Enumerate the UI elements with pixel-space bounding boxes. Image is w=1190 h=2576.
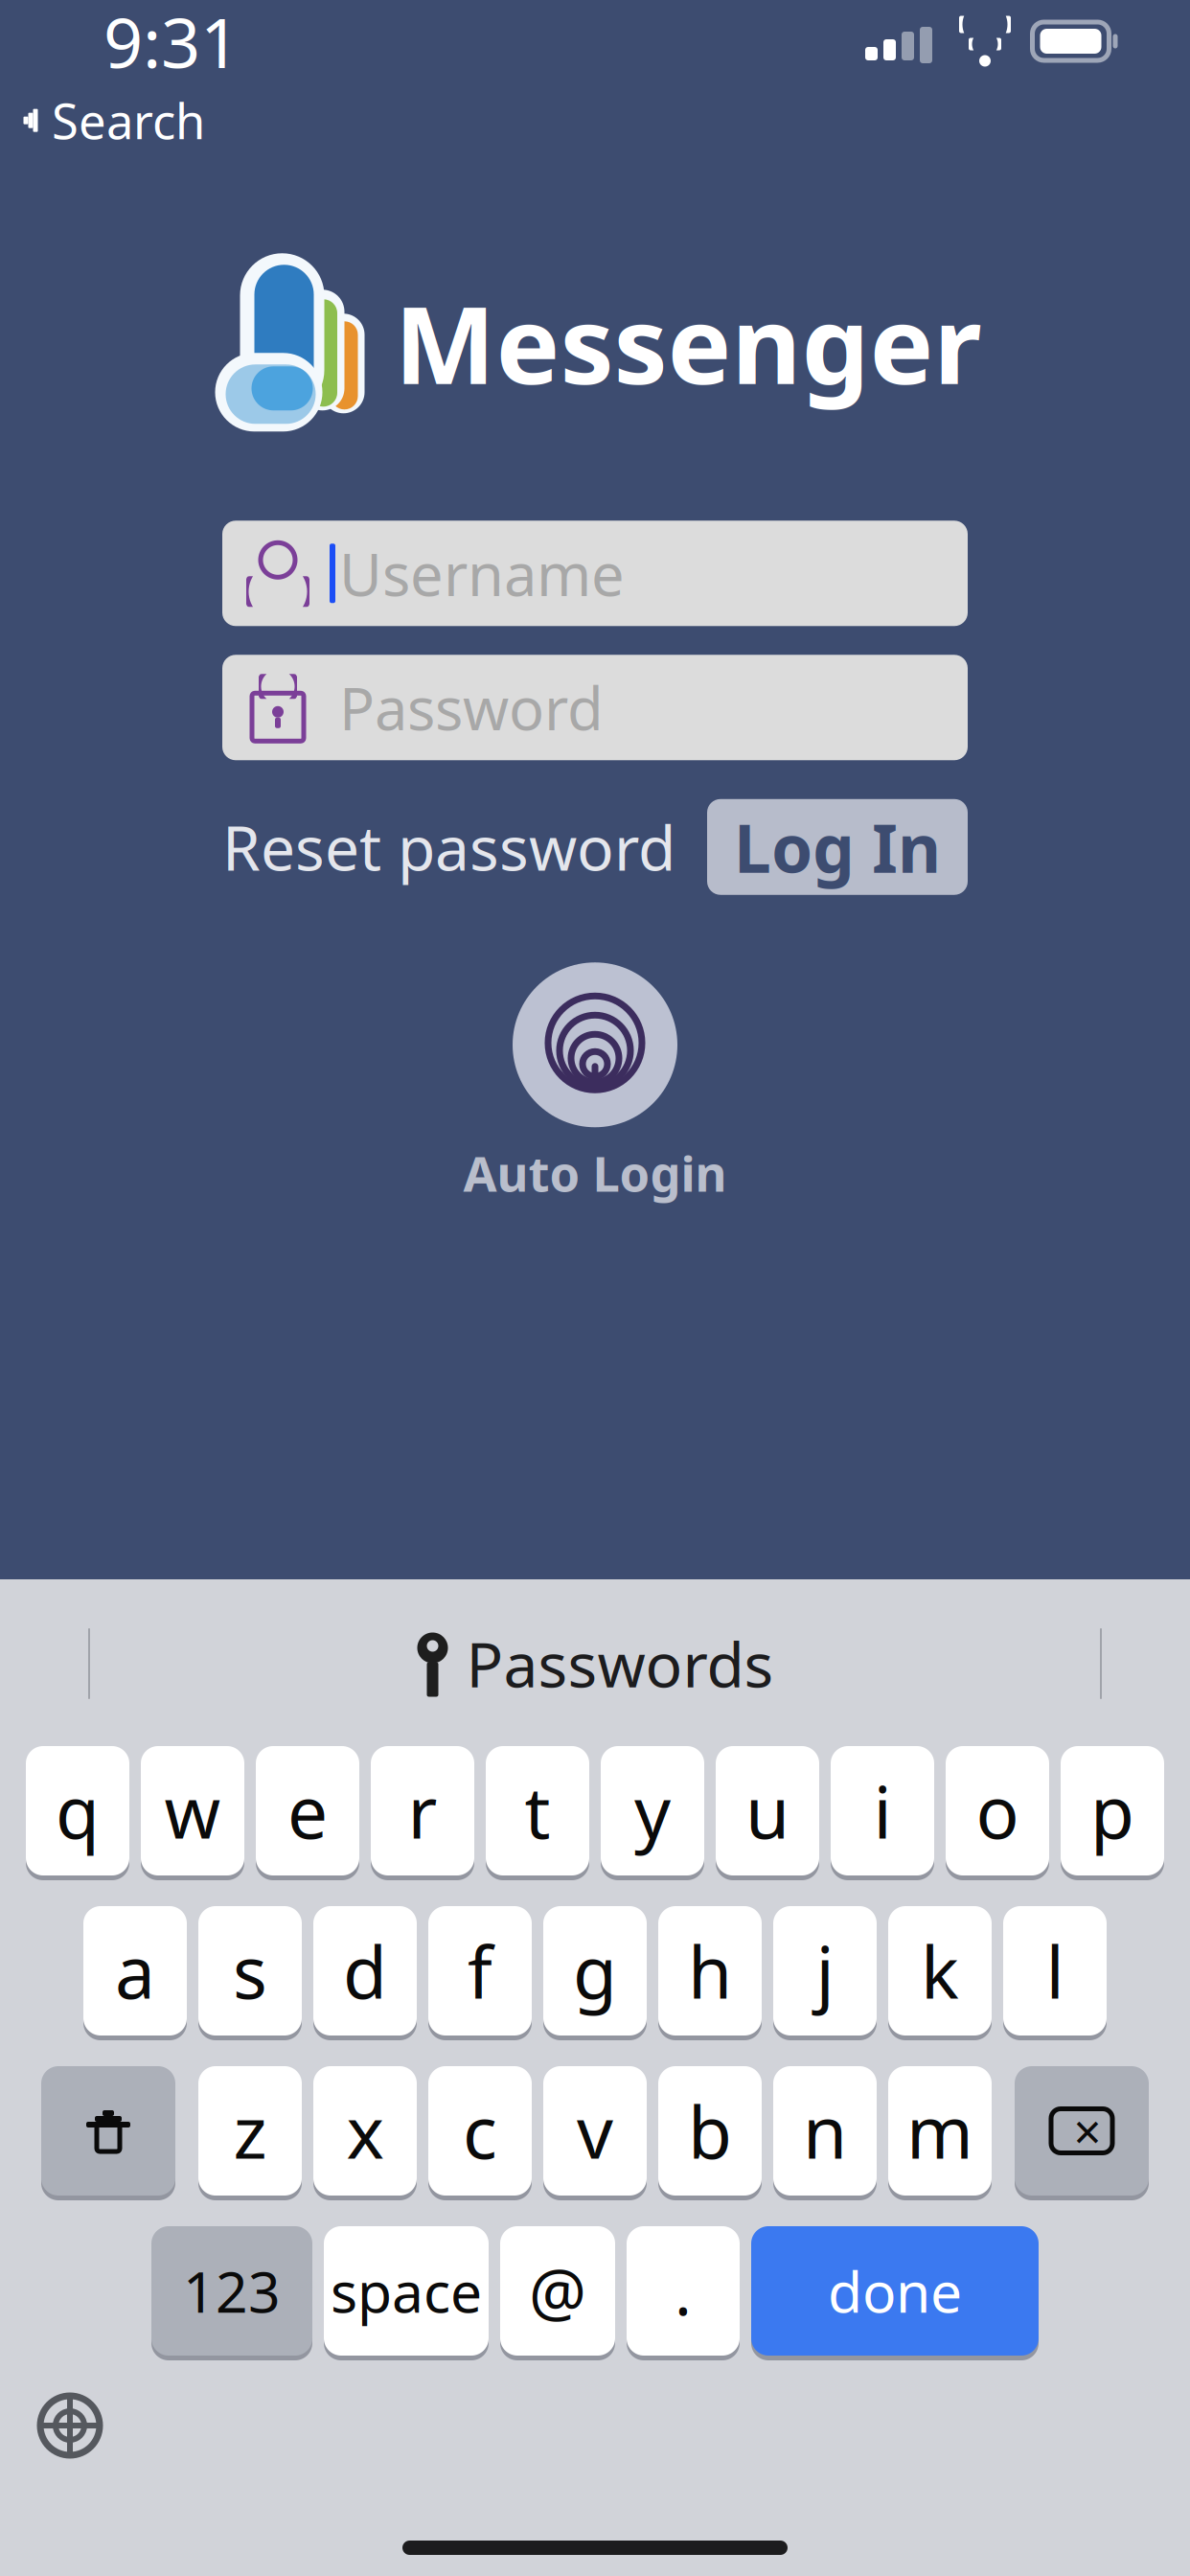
button[interactable]: n [773,2062,877,2199]
button[interactable]: k [888,1902,992,2039]
staticText: k [921,1923,959,2018]
staticText: h [688,1923,732,2018]
button[interactable]: Username [222,521,968,626]
staticText: e [287,1763,328,1858]
staticText: n [803,2083,847,2178]
button[interactable]: a [83,1902,187,2039]
staticText: done [828,2254,962,2328]
staticText: Reset password [222,806,675,888]
button[interactable]: @ [500,2222,615,2359]
staticText: o [976,1763,1019,1858]
staticText: g [573,1923,617,2018]
staticText: b [688,2083,732,2178]
staticText: Log In [734,803,941,891]
button[interactable]: g [543,1902,647,2039]
staticText: f [468,1923,492,2018]
staticText: a [115,1923,155,2018]
staticText: . [675,2248,692,2333]
staticText: Password [339,669,604,747]
staticText: t [525,1763,550,1858]
button[interactable]: s [198,1902,302,2039]
button[interactable]: e [256,1742,359,1879]
button[interactable]: x [313,2062,417,2199]
staticText: l [1046,1923,1064,2018]
button[interactable]: o [946,1742,1049,1879]
button[interactable]: j [773,1902,877,2039]
staticText: Username [339,534,625,612]
button[interactable]: t [486,1742,589,1879]
button[interactable]: v [543,2062,647,2199]
button[interactable]: Auto Login with fingerprint [463,962,727,1205]
button[interactable]: Shift [41,2062,175,2199]
staticText: Search [52,88,205,153]
staticText: r [408,1763,437,1858]
staticText: i [873,1763,892,1858]
button[interactable]: y [601,1742,704,1879]
button[interactable]: Search [0,82,205,158]
staticText: @ [529,2248,586,2333]
staticText: c [463,2083,497,2178]
staticText: 123 [183,2254,281,2328]
button[interactable]: Password [222,655,968,760]
button[interactable]: u [716,1742,819,1879]
staticText: Messenger [394,271,982,414]
button[interactable]: Passwords [393,1613,797,1714]
button[interactable]: space [324,2222,489,2359]
button[interactable]: r [371,1742,474,1879]
staticText: m [906,2083,973,2178]
button[interactable]: h [658,1902,762,2039]
button[interactable]: d [313,1902,417,2039]
staticText: p [1090,1763,1134,1858]
button[interactable]: 123 [151,2222,312,2359]
button[interactable]: Switch keyboard [0,2384,102,2467]
button[interactable]: i [831,1742,934,1879]
staticText: Passwords [466,1623,774,1704]
button[interactable]: l [1003,1902,1107,2039]
staticText: w [164,1763,221,1858]
staticText: q [56,1763,100,1858]
button[interactable]: Reset password [222,791,675,903]
button[interactable]: p [1061,1742,1164,1879]
staticText: Auto Login [463,1141,727,1205]
button[interactable]: w [141,1742,244,1879]
staticText: y [634,1763,671,1858]
staticText: x [346,2083,384,2178]
staticText: s [233,1923,267,2018]
button[interactable]: Delete [1015,2062,1149,2199]
button[interactable]: b [658,2062,762,2199]
button[interactable]: Log In [707,799,968,895]
staticText: u [745,1763,790,1858]
staticText: d [343,1923,387,2018]
button[interactable]: . [627,2222,740,2359]
staticText: space [331,2254,482,2328]
button[interactable]: m [888,2062,992,2199]
staticText: × [1074,2099,1101,2163]
button[interactable]: c [428,2062,532,2199]
button[interactable]: q [26,1742,129,1879]
button[interactable]: f [428,1902,532,2039]
staticText: 9:31 [103,0,240,87]
staticText: j [816,1923,834,2018]
staticText: v [577,2083,613,2178]
button[interactable]: z [198,2062,302,2199]
button[interactable]: done [751,2222,1039,2359]
staticText: z [233,2083,267,2178]
